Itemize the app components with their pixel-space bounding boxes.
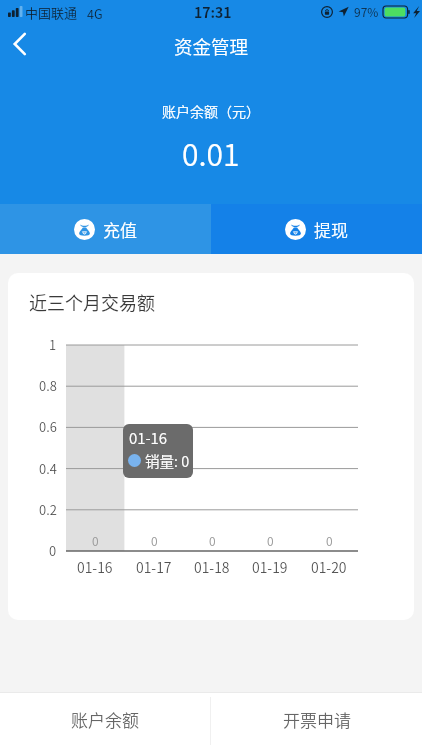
staticText: 提现	[314, 217, 348, 242]
staticText: 97%	[354, 3, 379, 20]
staticText: 4G	[87, 4, 103, 22]
button[interactable]: 账户余额	[0, 693, 210, 750]
staticText: 0.01	[182, 131, 240, 174]
button[interactable]: 提现	[211, 204, 422, 254]
staticText: 近三个月交易额	[29, 289, 155, 315]
staticText: 0.2	[39, 500, 57, 519]
staticText: 0	[151, 532, 158, 549]
staticText: 01-16	[129, 427, 168, 449]
staticText: 0	[209, 532, 216, 549]
staticText: 开票申请	[283, 707, 351, 732]
staticText: 01-19	[252, 557, 288, 577]
staticText: 充值	[103, 217, 137, 242]
staticText: 0	[92, 532, 99, 549]
button[interactable]: 充值	[0, 204, 211, 254]
staticText: 17:31	[194, 2, 232, 22]
button[interactable]: 开票申请	[211, 693, 422, 750]
staticText: 销量: 0	[145, 450, 190, 471]
staticText: 中国联通	[25, 3, 78, 22]
staticText: 01-17	[136, 557, 172, 577]
staticText: 01-20	[311, 557, 347, 577]
staticText: 0	[267, 532, 274, 549]
staticText: 资金管理	[174, 33, 249, 60]
staticText: 账户余额（元）	[162, 101, 260, 121]
staticText: 0	[49, 541, 57, 560]
staticText: 01-18	[194, 557, 230, 577]
staticText: 0.8	[39, 376, 57, 395]
staticText: 0.6	[39, 417, 57, 436]
staticText: 0	[326, 532, 333, 549]
staticText: 0.4	[39, 459, 57, 478]
staticText: 账户余额	[71, 707, 139, 732]
staticText: 1	[49, 335, 57, 354]
staticText: 01-16	[77, 557, 113, 577]
button[interactable]: Back	[0, 22, 42, 66]
